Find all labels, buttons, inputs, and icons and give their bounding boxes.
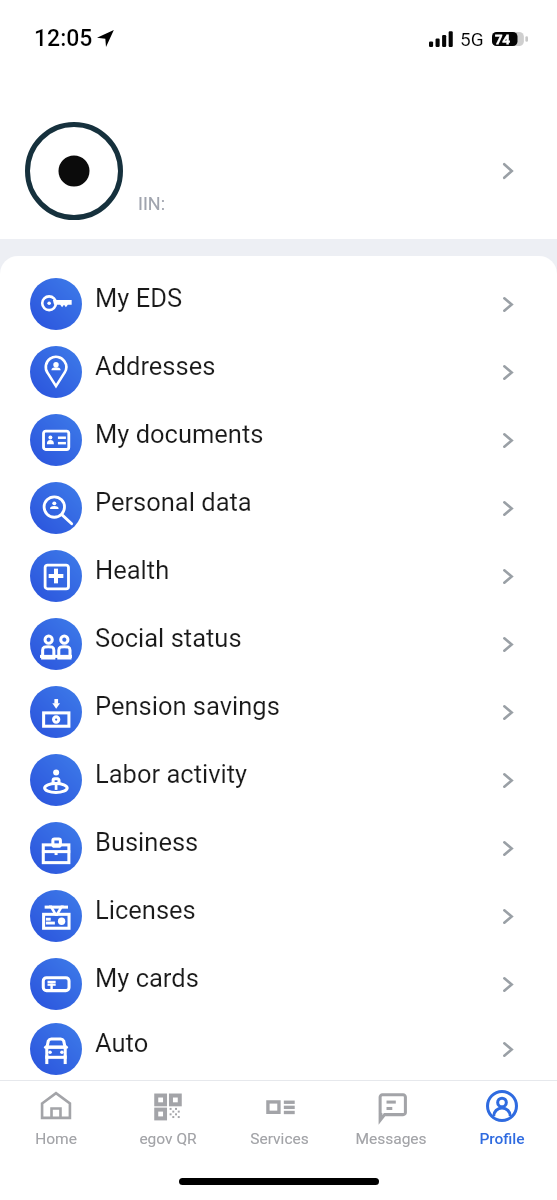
staticText: Social status bbox=[95, 623, 242, 653]
staticText: Services bbox=[250, 1130, 309, 1148]
button[interactable]: egov QR bbox=[112, 1081, 224, 1151]
button[interactable]: Personal data bbox=[0, 474, 557, 542]
staticText: Health bbox=[95, 555, 170, 585]
staticText: My documents bbox=[95, 419, 264, 449]
button[interactable]: My cards bbox=[0, 950, 557, 1018]
button[interactable]: Auto bbox=[0, 1018, 557, 1080]
button[interactable]: My EDS bbox=[0, 270, 557, 338]
staticText: My cards bbox=[95, 963, 199, 993]
staticText: Personal data bbox=[95, 487, 252, 517]
button[interactable]: IIN: bbox=[0, 70, 557, 239]
staticText: 74 bbox=[495, 32, 510, 46]
staticText: My EDS bbox=[95, 283, 183, 313]
staticText: Addresses bbox=[95, 351, 216, 381]
button[interactable]: Pension savings bbox=[0, 678, 557, 746]
button[interactable]: Business bbox=[0, 814, 557, 882]
staticText: egov QR bbox=[139, 1130, 197, 1148]
button[interactable]: Licenses bbox=[0, 882, 557, 950]
staticText: Auto bbox=[95, 1028, 149, 1058]
staticText: Messages bbox=[355, 1130, 427, 1148]
button[interactable]: Profile bbox=[446, 1081, 557, 1151]
button[interactable]: Services bbox=[224, 1081, 335, 1151]
button[interactable]: Labor activity bbox=[0, 746, 557, 814]
staticText: IIN: bbox=[138, 193, 165, 214]
button[interactable]: Home bbox=[0, 1081, 112, 1151]
button[interactable]: Social status bbox=[0, 610, 557, 678]
staticText: Home bbox=[35, 1130, 77, 1148]
staticText: 5G bbox=[460, 28, 484, 50]
staticText: Business bbox=[95, 827, 199, 857]
button[interactable]: Addresses bbox=[0, 338, 557, 406]
staticText: Pension savings bbox=[95, 691, 280, 721]
button[interactable]: My documents bbox=[0, 406, 557, 474]
button[interactable]: Health bbox=[0, 542, 557, 610]
button[interactable]: Messages bbox=[335, 1081, 446, 1151]
staticText: Labor activity bbox=[95, 759, 248, 789]
staticText: Profile bbox=[479, 1130, 525, 1148]
staticText: Licenses bbox=[95, 895, 196, 925]
staticText: 12:05 bbox=[34, 25, 93, 52]
